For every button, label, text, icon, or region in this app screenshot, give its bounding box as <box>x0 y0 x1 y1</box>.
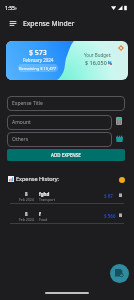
button[interactable]: Category <box>114 133 124 143</box>
button[interactable]: Menu <box>6 17 19 30</box>
staticText: Feb 2024 <box>19 197 34 202</box>
staticText: Food <box>39 217 48 222</box>
staticText: $ 566 <box>104 213 116 219</box>
staticText: Remaining $ 15,477 <box>19 66 57 71</box>
staticText: fghd <box>39 191 50 197</box>
button[interactable]: Amount <box>7 115 112 130</box>
staticText: Expense History: <box>16 175 60 182</box>
staticText: Transport <box>39 197 55 202</box>
button[interactable]: Expense Title <box>7 96 125 111</box>
button[interactable]: Info <box>119 177 125 183</box>
button[interactable]: ADD EXPENSE <box>7 149 125 161</box>
staticText: $ 16,050 <box>85 59 107 66</box>
staticText: 1:55 <box>5 5 15 12</box>
button[interactable]: Calculator <box>114 116 124 126</box>
staticText: Amount <box>12 119 31 126</box>
button[interactable]: Others <box>7 132 112 147</box>
button[interactable]: Delete <box>116 190 125 199</box>
button[interactable]: 8 <box>0 186 134 204</box>
button[interactable]: Export report <box>110 264 129 283</box>
staticText: Expense Title <box>12 100 43 107</box>
staticText: $ 67 <box>104 193 113 199</box>
button[interactable]: 8 <box>0 206 134 224</box>
button[interactable]: Delete <box>116 210 125 219</box>
staticText: ADD EXPENSE <box>51 152 81 158</box>
staticText: February 2024 <box>23 57 54 63</box>
staticText: 8 <box>25 191 28 197</box>
staticText: f <box>39 211 41 217</box>
staticText: Feb 2024 <box>19 217 34 222</box>
staticText: $ 573 <box>29 48 47 58</box>
staticText: 8 <box>25 211 28 217</box>
staticText: Your Budget: <box>84 52 112 58</box>
staticText: Others <box>12 136 29 143</box>
staticText: Expense Minder <box>23 19 75 28</box>
